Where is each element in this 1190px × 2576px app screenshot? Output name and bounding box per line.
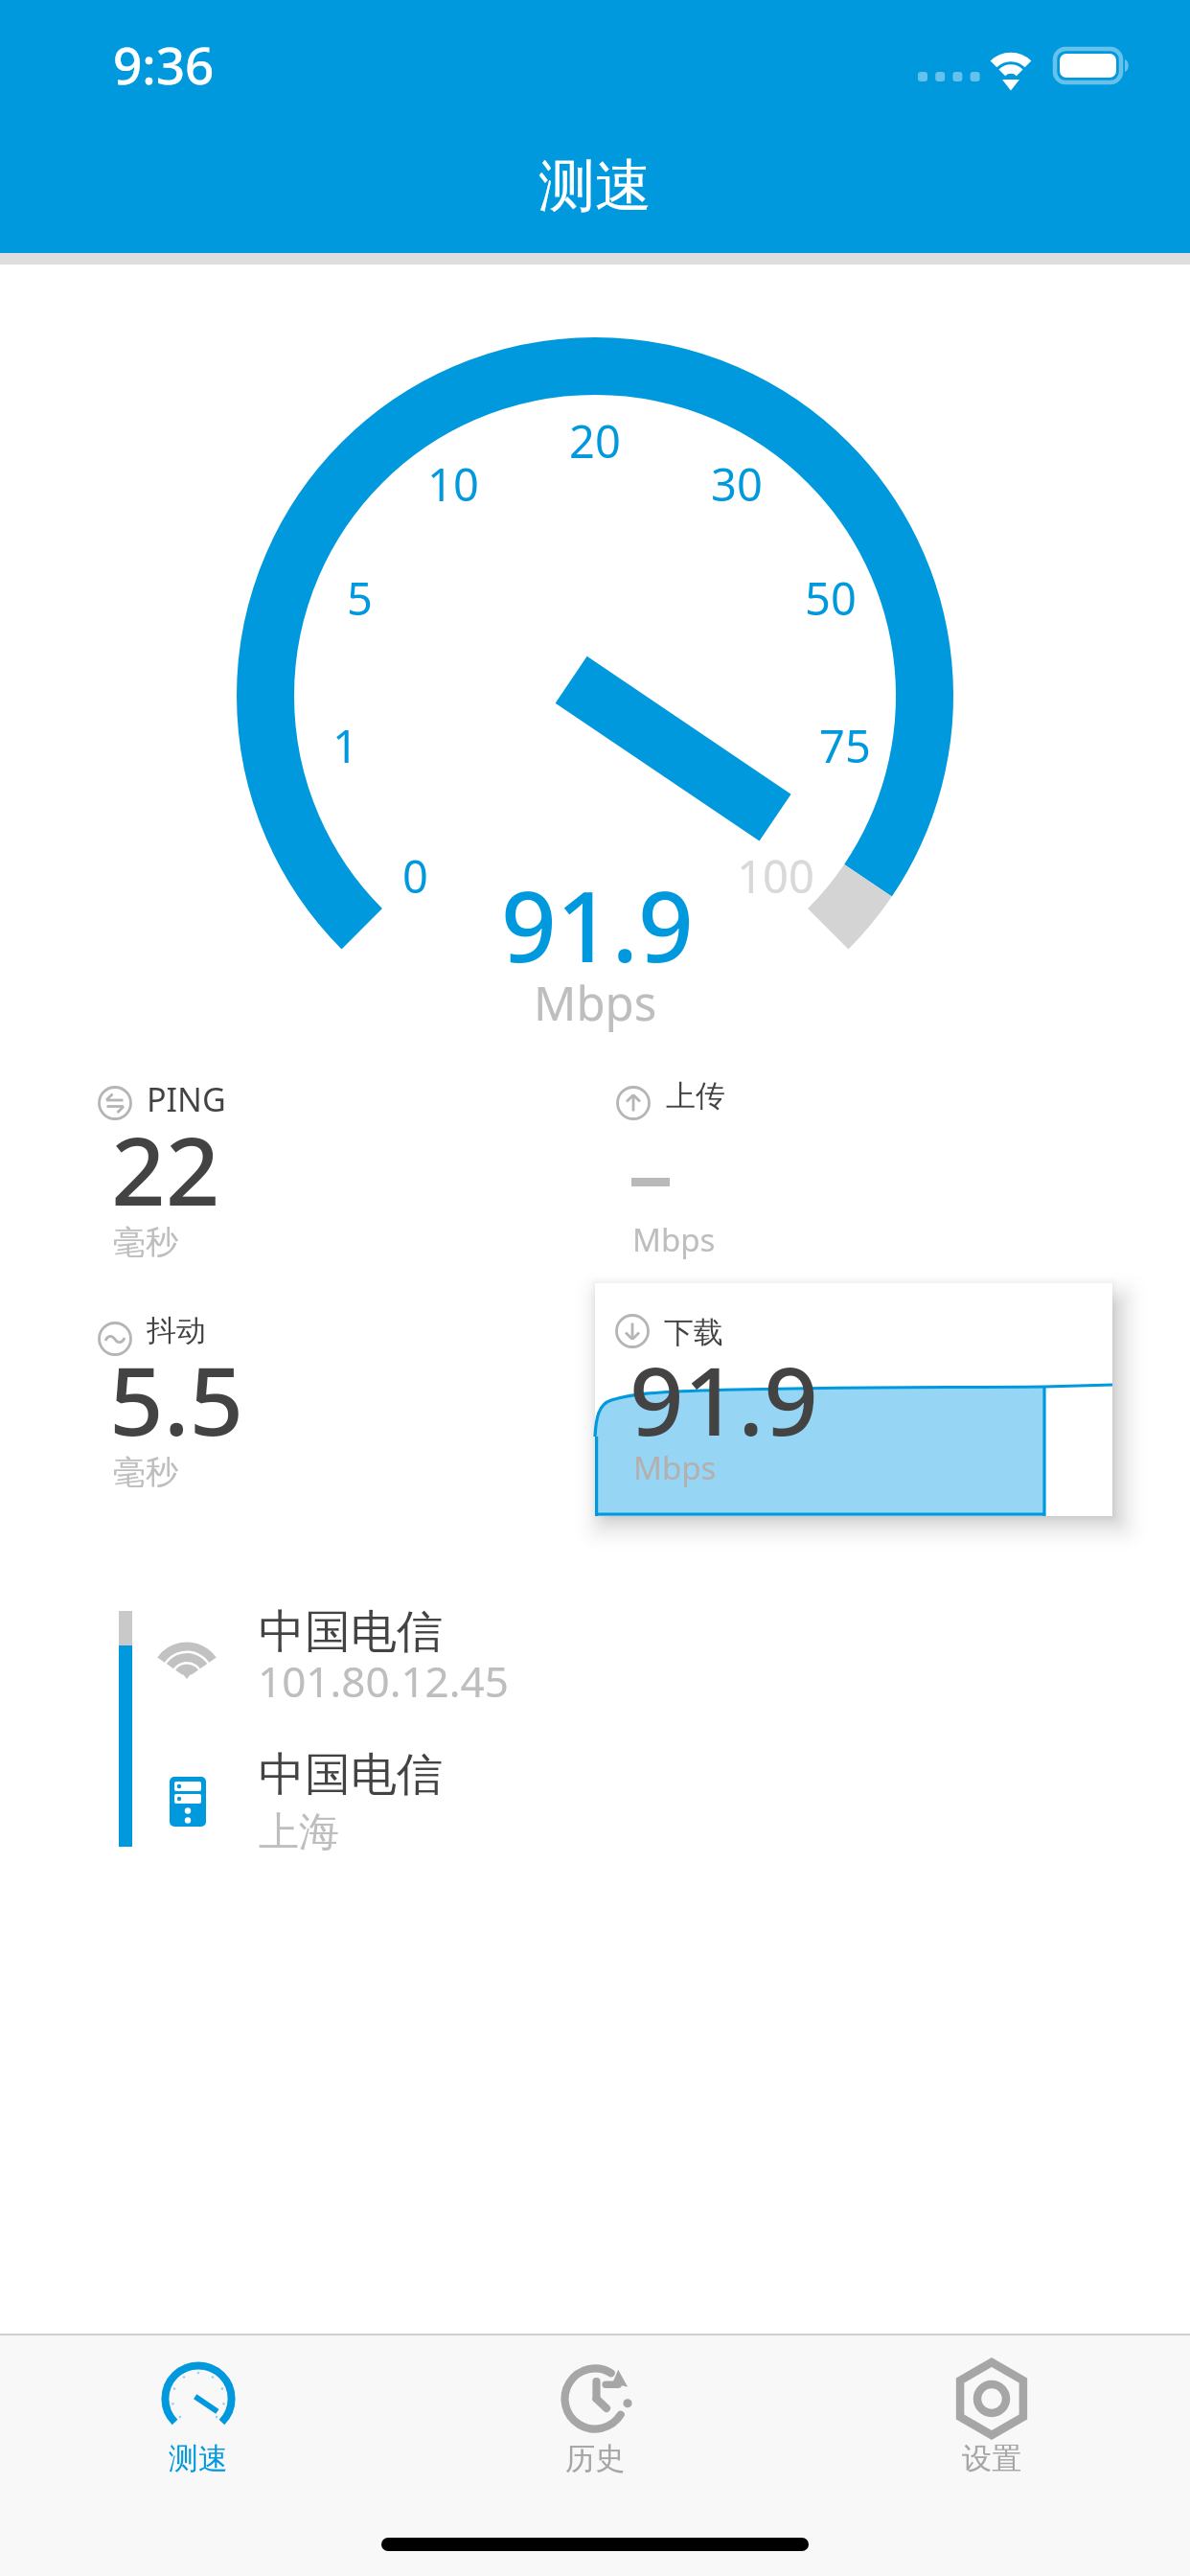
button[interactable]: 历史: [397, 2335, 793, 2576]
staticText: 5: [347, 567, 373, 629]
button[interactable]: 设置: [793, 2335, 1190, 2576]
staticText: 91.9: [629, 1334, 818, 1463]
staticText: 测速: [169, 2440, 228, 2477]
button[interactable]: 测速: [0, 2335, 397, 2576]
staticText: 9:36: [113, 30, 215, 99]
staticText: 历史: [565, 2440, 625, 2477]
staticText: 30: [711, 453, 763, 515]
button[interactable]: 下载: [595, 1283, 1112, 1516]
staticText: 22: [111, 1104, 220, 1233]
staticText: 中国电信: [259, 1603, 443, 1661]
staticText: 测速: [538, 150, 652, 221]
staticText: 100: [737, 845, 814, 907]
staticText: Mbps: [534, 971, 657, 1035]
staticText: 1: [332, 715, 358, 776]
staticText: 5.5: [109, 1334, 244, 1463]
staticText: 毫秒: [113, 1222, 178, 1263]
staticText: 101.80.12.45: [258, 1652, 509, 1710]
button[interactable]: 上传: [611, 1073, 1052, 1279]
staticText: Mbps: [633, 1446, 717, 1489]
staticText: 0: [402, 845, 428, 907]
staticText: 75: [819, 715, 871, 776]
staticText: 20: [569, 410, 621, 471]
staticText: 下载: [664, 1314, 723, 1351]
staticText: PING: [147, 1077, 226, 1121]
button[interactable]: 抖动: [92, 1309, 533, 1515]
button[interactable]: 中国电信: [0, 1591, 1190, 1869]
staticText: Mbps: [632, 1218, 716, 1261]
staticText: 50: [805, 567, 857, 629]
staticText: 10: [427, 453, 479, 515]
staticText: 设置: [962, 2440, 1021, 2477]
other: Status: signal, wifi, battery: [910, 38, 1140, 96]
button[interactable]: PING: [92, 1073, 533, 1279]
staticText: 抖动: [147, 1312, 206, 1349]
staticText: 91.9: [501, 859, 694, 991]
staticText: 上传: [666, 1077, 725, 1115]
staticText: 上海: [259, 1807, 339, 1858]
staticText: 毫秒: [113, 1452, 178, 1493]
staticText: 中国电信: [259, 1746, 443, 1804]
